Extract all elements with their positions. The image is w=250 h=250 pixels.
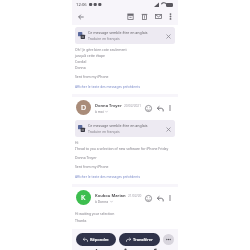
button[interactable]: Delete xyxy=(139,11,150,22)
staticText: Donna Troyer xyxy=(95,103,122,108)
button[interactable]: Add reaction xyxy=(143,193,153,203)
button[interactable]: More options xyxy=(166,194,174,202)
button[interactable]: Transférer xyxy=(119,233,160,246)
button[interactable]: Archive xyxy=(125,11,136,22)
staticText: Sent from my iPhone xyxy=(75,164,109,169)
button[interactable]: D xyxy=(72,97,178,118)
staticText: Hi xyxy=(75,140,79,145)
button[interactable]: Reply xyxy=(155,193,165,203)
button[interactable]: Dismiss translation banner xyxy=(164,125,172,133)
button[interactable]: More options xyxy=(166,12,175,21)
staticText: Koubou Marian xyxy=(95,193,126,198)
staticText: Oh ! Je gère bien cote seulement xyxy=(75,47,127,52)
button[interactable]: Ce message semble être en anglais xyxy=(75,120,175,137)
staticText: K xyxy=(81,193,86,203)
button[interactable]: Recent apps xyxy=(90,249,102,250)
staticText: Ce message semble être en anglais xyxy=(88,30,148,35)
staticText: 21/02/2021 xyxy=(128,194,143,198)
staticText: 20/02/2021 xyxy=(124,104,141,108)
staticText: Thanks xyxy=(75,218,87,223)
staticText: Traduire en français xyxy=(88,36,120,41)
staticText: Sent from my iPhone xyxy=(75,74,109,79)
staticText: Répondre xyxy=(90,237,109,242)
staticText: à moi xyxy=(95,109,104,113)
button[interactable]: Afficher le texte des messages précédent… xyxy=(75,83,141,89)
staticText: Hi waiting your selection xyxy=(75,211,115,216)
staticText: Afficher le texte des messages précédent… xyxy=(75,174,141,178)
staticText: Donna xyxy=(75,65,86,70)
staticText: Ce message semble être en anglais xyxy=(88,123,148,128)
staticText: D xyxy=(81,103,87,113)
button[interactable]: Reply xyxy=(155,103,165,113)
button[interactable]: Add reaction xyxy=(143,103,153,113)
staticText: Afficher le texte des messages précédent… xyxy=(75,84,141,88)
staticText: Cordial xyxy=(75,59,87,64)
button[interactable]: Afficher le texte des messages précédent… xyxy=(75,173,141,179)
button[interactable]: More options xyxy=(166,104,174,112)
staticText: 12:06 xyxy=(76,2,87,8)
staticText: jusqu'à cette étape xyxy=(75,53,105,58)
button[interactable]: Mark unread xyxy=(153,11,164,22)
button[interactable]: Dismiss translation banner xyxy=(164,32,172,40)
button[interactable]: Ce message semble être en anglais xyxy=(75,27,175,44)
button[interactable]: More reply options xyxy=(163,234,174,245)
button[interactable]: Back xyxy=(75,11,86,22)
staticText: Transférer xyxy=(133,237,153,242)
staticText: I'head to you a selection of new softwar… xyxy=(75,146,169,151)
button[interactable]: Home xyxy=(119,249,131,250)
staticText: à Donna xyxy=(95,199,109,203)
button[interactable]: K xyxy=(72,187,178,208)
button[interactable]: Répondre xyxy=(76,233,116,246)
button[interactable]: Back xyxy=(149,249,161,250)
staticText: Traduire en français xyxy=(88,129,120,134)
staticText: Donna Troyer xyxy=(75,155,97,160)
